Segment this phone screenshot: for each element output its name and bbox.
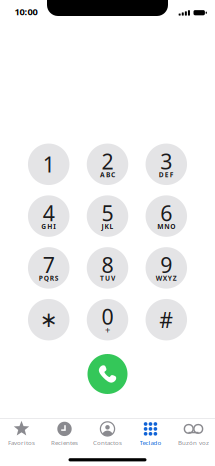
staticText: 10:00 — [14, 5, 37, 18]
staticText: ∗ — [40, 307, 58, 332]
button[interactable]: 6 — [146, 195, 187, 237]
button[interactable]: 9 — [146, 247, 187, 289]
staticText: 7 — [43, 250, 55, 279]
button[interactable]: 7 — [28, 247, 69, 289]
staticText: 3 — [160, 147, 172, 176]
staticText: 2 — [101, 147, 113, 176]
staticText: 0 — [101, 302, 113, 331]
staticText: Favoritos — [8, 438, 35, 447]
button[interactable]: 8 — [87, 247, 128, 289]
button[interactable]: 2 — [87, 144, 128, 185]
staticText: WXYZ — [156, 274, 177, 283]
staticText: Contactos — [93, 438, 122, 447]
button[interactable]: 0 — [87, 299, 128, 340]
staticText: + — [105, 324, 110, 336]
staticText: MNO — [157, 222, 175, 231]
button[interactable]: # — [146, 299, 187, 340]
button[interactable]: 5 — [87, 195, 128, 237]
button[interactable]: 4 — [28, 195, 69, 237]
button[interactable]: ∗ — [28, 299, 69, 340]
staticText: TUV — [100, 274, 115, 283]
button[interactable]: 1 — [28, 144, 69, 185]
button[interactable]: Llamar — [87, 354, 127, 394]
staticText: PQRS — [39, 274, 59, 283]
staticText: # — [159, 305, 173, 334]
staticText: 6 — [160, 198, 172, 227]
staticText: Buzón voz — [178, 438, 209, 447]
staticText: DEF — [159, 170, 174, 179]
button[interactable]: Teclado — [129, 421, 172, 451]
staticText: JKL — [101, 222, 114, 231]
staticText: ABC — [100, 170, 115, 179]
staticText: 9 — [160, 250, 172, 279]
button[interactable]: Favoritos — [0, 421, 43, 451]
staticText: 1 — [43, 150, 55, 179]
button[interactable]: Contactos — [86, 421, 129, 451]
button[interactable]: Buzón voz — [172, 421, 215, 451]
staticText: 4 — [43, 198, 55, 227]
staticText: GHI — [41, 222, 56, 231]
staticText: 5 — [101, 198, 113, 227]
staticText: 8 — [101, 250, 113, 279]
button[interactable]: Recientes — [43, 421, 86, 451]
staticText: Teclado — [139, 438, 161, 447]
button[interactable]: 3 — [146, 144, 187, 185]
staticText: Recientes — [51, 438, 78, 447]
